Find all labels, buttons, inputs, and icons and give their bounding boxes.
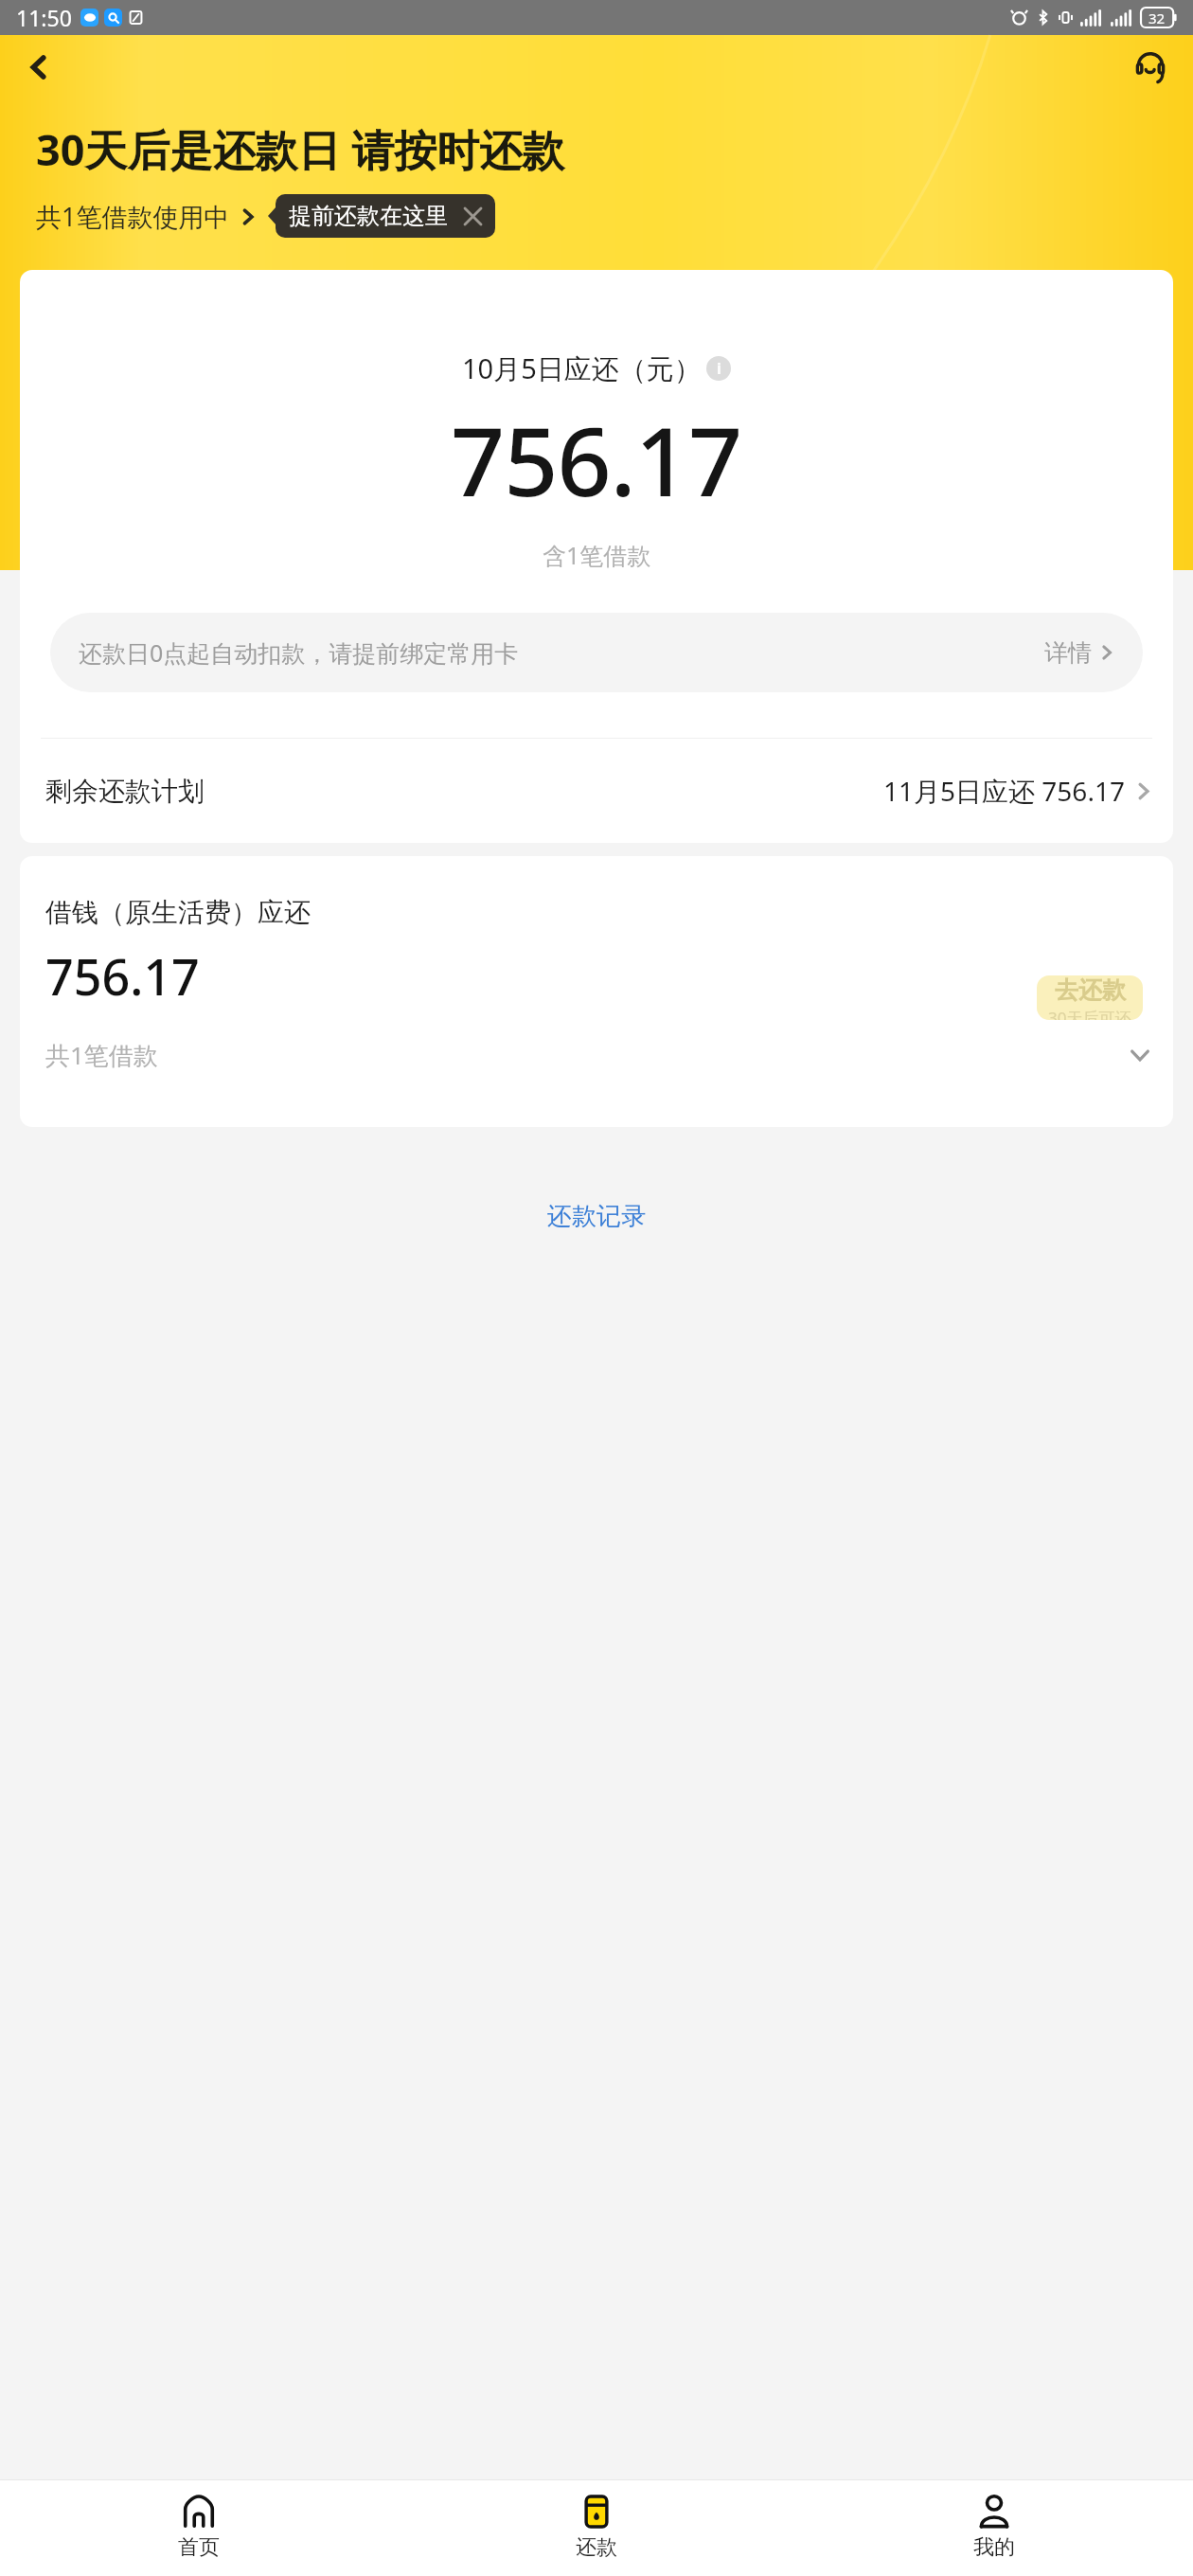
button[interactable]: Close tip [461,205,484,227]
staticText: 含1笔借款 [543,539,651,571]
staticText: 756.17 [45,942,200,1010]
button[interactable]: 还款 [398,2480,795,2576]
staticText: 756.17 [451,395,742,524]
button[interactable]: 还款记录 [0,1201,1193,1232]
staticText: 还款记录 [547,1201,646,1232]
staticText: 去还款 [1055,975,1126,1005]
button[interactable]: 去还款 [1037,975,1143,1020]
button[interactable]: 剩余还款计划 [20,739,1173,843]
staticText: 11:50 [16,3,72,32]
staticText: 详情 [1044,638,1092,668]
staticText: 首页 [178,2534,220,2561]
button[interactable]: 共1笔借款使用中 [36,199,257,234]
staticText: 共1笔借款 [45,1038,158,1072]
staticText: 共1笔借款使用中 [36,199,230,234]
staticText: 剩余还款计划 [45,775,205,808]
button[interactable]: Info [706,356,731,381]
staticText: 30天后可还 [1048,1007,1131,1020]
staticText: i [717,358,721,379]
button[interactable]: 我的 [795,2480,1193,2576]
staticText: 借钱（原生活费）应还 [45,896,311,929]
staticText: 10月5日应还（元） [462,349,702,387]
staticText: 提前还款在这里 [289,202,448,230]
button[interactable]: Back [13,42,64,93]
button[interactable]: 还款日0点起自动扣款，请提前绑定常用卡 [50,613,1143,692]
staticText: 还款 [576,2534,617,2561]
button[interactable]: 共1笔借款 [20,1038,1173,1072]
staticText: 32 [1148,9,1166,27]
staticText: 还款日0点起自动扣款，请提前绑定常用卡 [79,636,519,669]
staticText: 我的 [973,2534,1015,2561]
staticText: 11月5日应还 756.17 [883,773,1125,809]
button[interactable]: Customer service [1125,42,1176,93]
button[interactable]: 提前还款在这里 [276,194,495,238]
staticText: 30天后是还款日 请按时还款 [36,120,565,178]
button[interactable]: 首页 [0,2480,398,2576]
